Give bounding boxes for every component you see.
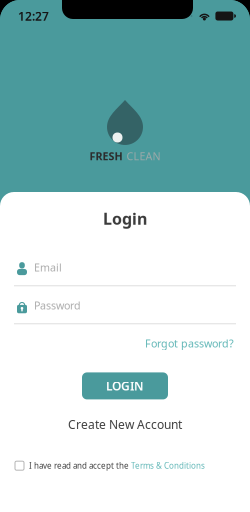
staticText: FRESH xyxy=(89,149,122,163)
staticText: Terms & Conditions xyxy=(131,460,205,471)
staticText: Password xyxy=(34,298,81,312)
button[interactable]: Forgot password? xyxy=(145,336,234,350)
button[interactable]: Terms & Conditions xyxy=(131,460,205,471)
staticText: Login xyxy=(103,208,147,229)
staticText: CLEAN xyxy=(126,149,160,163)
button[interactable]: Create New Account xyxy=(68,416,182,432)
button[interactable]: Accept terms and conditions xyxy=(15,461,24,470)
staticText: LOGIN xyxy=(106,378,144,394)
staticText: I have read and accept the xyxy=(29,460,131,471)
staticText: Email xyxy=(34,260,62,274)
staticText: 12:27 xyxy=(18,8,49,24)
button[interactable]: LOGIN xyxy=(82,372,168,399)
staticText: Forgot password? xyxy=(145,336,234,350)
staticText: Create New Account xyxy=(68,416,182,432)
